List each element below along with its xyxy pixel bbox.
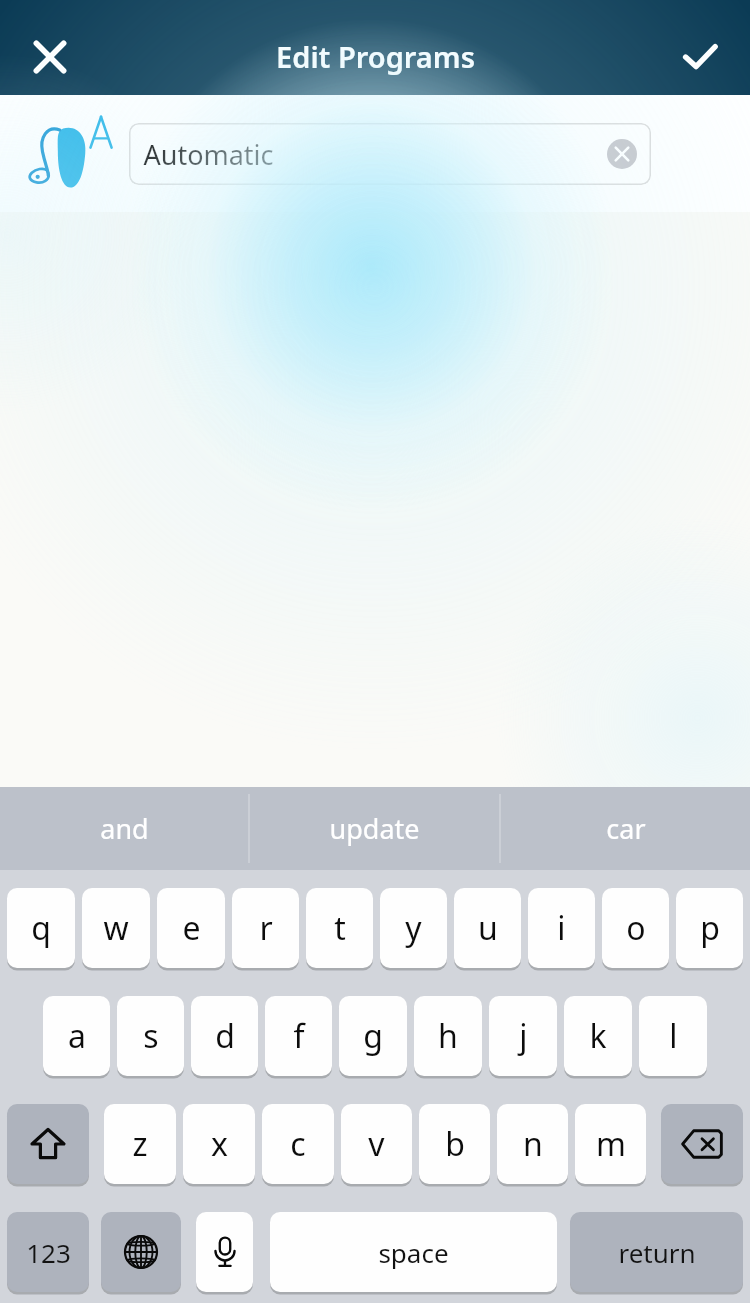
staticText: return: [618, 1235, 696, 1270]
button[interactable]: y: [380, 888, 447, 968]
staticText: t: [334, 906, 346, 950]
button[interactable]: Done: [666, 23, 734, 91]
staticText: o: [626, 906, 646, 950]
staticText: car: [606, 810, 646, 847]
staticText: z: [132, 1122, 148, 1166]
staticText: m: [596, 1122, 626, 1166]
staticText: k: [589, 1014, 607, 1058]
button[interactable]: Automatic: [129, 123, 651, 185]
staticText: g: [363, 1014, 383, 1058]
button[interactable]: h: [414, 996, 482, 1076]
staticText: y: [405, 906, 422, 950]
button[interactable]: return: [570, 1212, 743, 1292]
button[interactable]: Voice input: [196, 1212, 253, 1292]
staticText: l: [669, 1014, 678, 1058]
button[interactable]: b: [419, 1104, 490, 1184]
button[interactable]: l: [639, 996, 707, 1076]
button[interactable]: space: [270, 1212, 557, 1292]
button[interactable]: z: [104, 1104, 176, 1184]
staticText: space: [378, 1235, 449, 1270]
staticText: p: [700, 906, 720, 950]
staticText: i: [557, 906, 566, 950]
button[interactable]: u: [454, 888, 521, 968]
button[interactable]: t: [306, 888, 373, 968]
button[interactable]: q: [7, 888, 75, 968]
staticText: d: [215, 1014, 235, 1058]
staticText: a: [68, 1014, 86, 1058]
button[interactable]: k: [564, 996, 632, 1076]
staticText: e: [182, 906, 201, 950]
button[interactable]: Shift: [7, 1104, 89, 1184]
staticText: r: [259, 906, 273, 950]
button[interactable]: i: [528, 888, 595, 968]
button[interactable]: and: [0, 787, 248, 870]
staticText: c: [290, 1122, 306, 1166]
staticText: update: [329, 810, 420, 847]
button[interactable]: Close: [16, 23, 84, 91]
button[interactable]: 123: [7, 1212, 89, 1292]
button[interactable]: s: [117, 996, 184, 1076]
button[interactable]: Clear text: [607, 139, 637, 169]
staticText: s: [143, 1014, 159, 1058]
button[interactable]: update: [250, 787, 499, 870]
button[interactable]: v: [341, 1104, 412, 1184]
staticText: j: [519, 1014, 528, 1058]
staticText: and: [100, 810, 149, 847]
button[interactable]: c: [262, 1104, 334, 1184]
button[interactable]: r: [232, 888, 299, 968]
staticText: f: [293, 1014, 305, 1058]
staticText: 123: [26, 1235, 71, 1270]
button[interactable]: a: [43, 996, 110, 1076]
staticText: n: [523, 1122, 543, 1166]
staticText: b: [445, 1122, 465, 1166]
button[interactable]: n: [497, 1104, 568, 1184]
button[interactable]: d: [191, 996, 258, 1076]
staticText: w: [103, 906, 129, 950]
button[interactable]: car: [501, 787, 750, 870]
button[interactable]: e: [157, 888, 225, 968]
button[interactable]: o: [602, 888, 669, 968]
staticText: q: [31, 906, 51, 950]
staticText: v: [368, 1122, 385, 1166]
staticText: Automatic: [143, 136, 274, 173]
button[interactable]: Switch keyboard: [101, 1212, 181, 1292]
staticText: u: [478, 906, 498, 950]
staticText: h: [438, 1014, 458, 1058]
button[interactable]: m: [575, 1104, 646, 1184]
staticText: Edit Programs: [276, 37, 475, 76]
button[interactable]: j: [489, 996, 557, 1076]
button[interactable]: p: [676, 888, 743, 968]
staticText: x: [211, 1122, 228, 1166]
button[interactable]: Backspace: [661, 1104, 743, 1184]
button[interactable]: f: [265, 996, 332, 1076]
button[interactable]: x: [183, 1104, 255, 1184]
button[interactable]: w: [82, 888, 150, 968]
button[interactable]: g: [339, 996, 407, 1076]
